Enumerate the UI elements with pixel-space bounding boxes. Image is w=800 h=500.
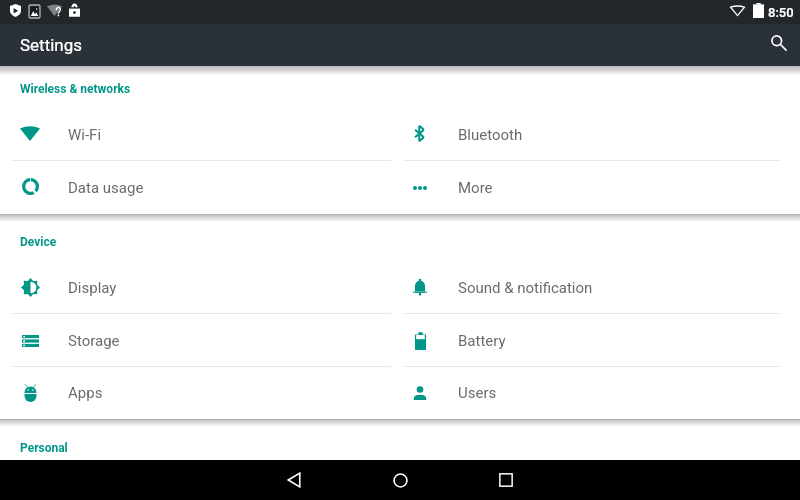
- staticText: Wireless & networks: [20, 82, 131, 96]
- staticText: Apps: [68, 384, 103, 402]
- staticText: Battery: [458, 332, 506, 350]
- button[interactable]: Recents: [486, 460, 526, 500]
- staticText: Bluetooth: [458, 126, 523, 144]
- button[interactable]: Battery: [400, 314, 800, 367]
- button[interactable]: Data usage: [0, 161, 400, 214]
- button[interactable]: Sound & notification: [400, 261, 800, 314]
- staticText: Wi-Fi: [68, 126, 102, 144]
- staticText: 8:50: [768, 5, 794, 20]
- staticText: Data usage: [68, 179, 144, 197]
- button[interactable]: Wi-Fi: [0, 108, 400, 161]
- staticText: Storage: [68, 332, 120, 350]
- button[interactable]: Users: [400, 367, 800, 419]
- button[interactable]: Home: [380, 460, 420, 500]
- button[interactable]: Storage: [0, 314, 400, 367]
- staticText: Display: [68, 279, 117, 297]
- button[interactable]: Bluetooth: [400, 108, 800, 161]
- staticText: Sound & notification: [458, 279, 593, 297]
- staticText: Settings: [20, 35, 83, 55]
- button[interactable]: Back: [274, 460, 314, 500]
- button[interactable]: Display: [0, 261, 400, 314]
- staticText: More: [458, 179, 493, 197]
- staticText: Users: [458, 384, 497, 402]
- staticText: Personal: [20, 441, 68, 455]
- button[interactable]: Search: [752, 24, 800, 66]
- button[interactable]: Apps: [0, 367, 400, 419]
- staticText: Device: [20, 235, 57, 249]
- button[interactable]: More: [400, 161, 800, 214]
